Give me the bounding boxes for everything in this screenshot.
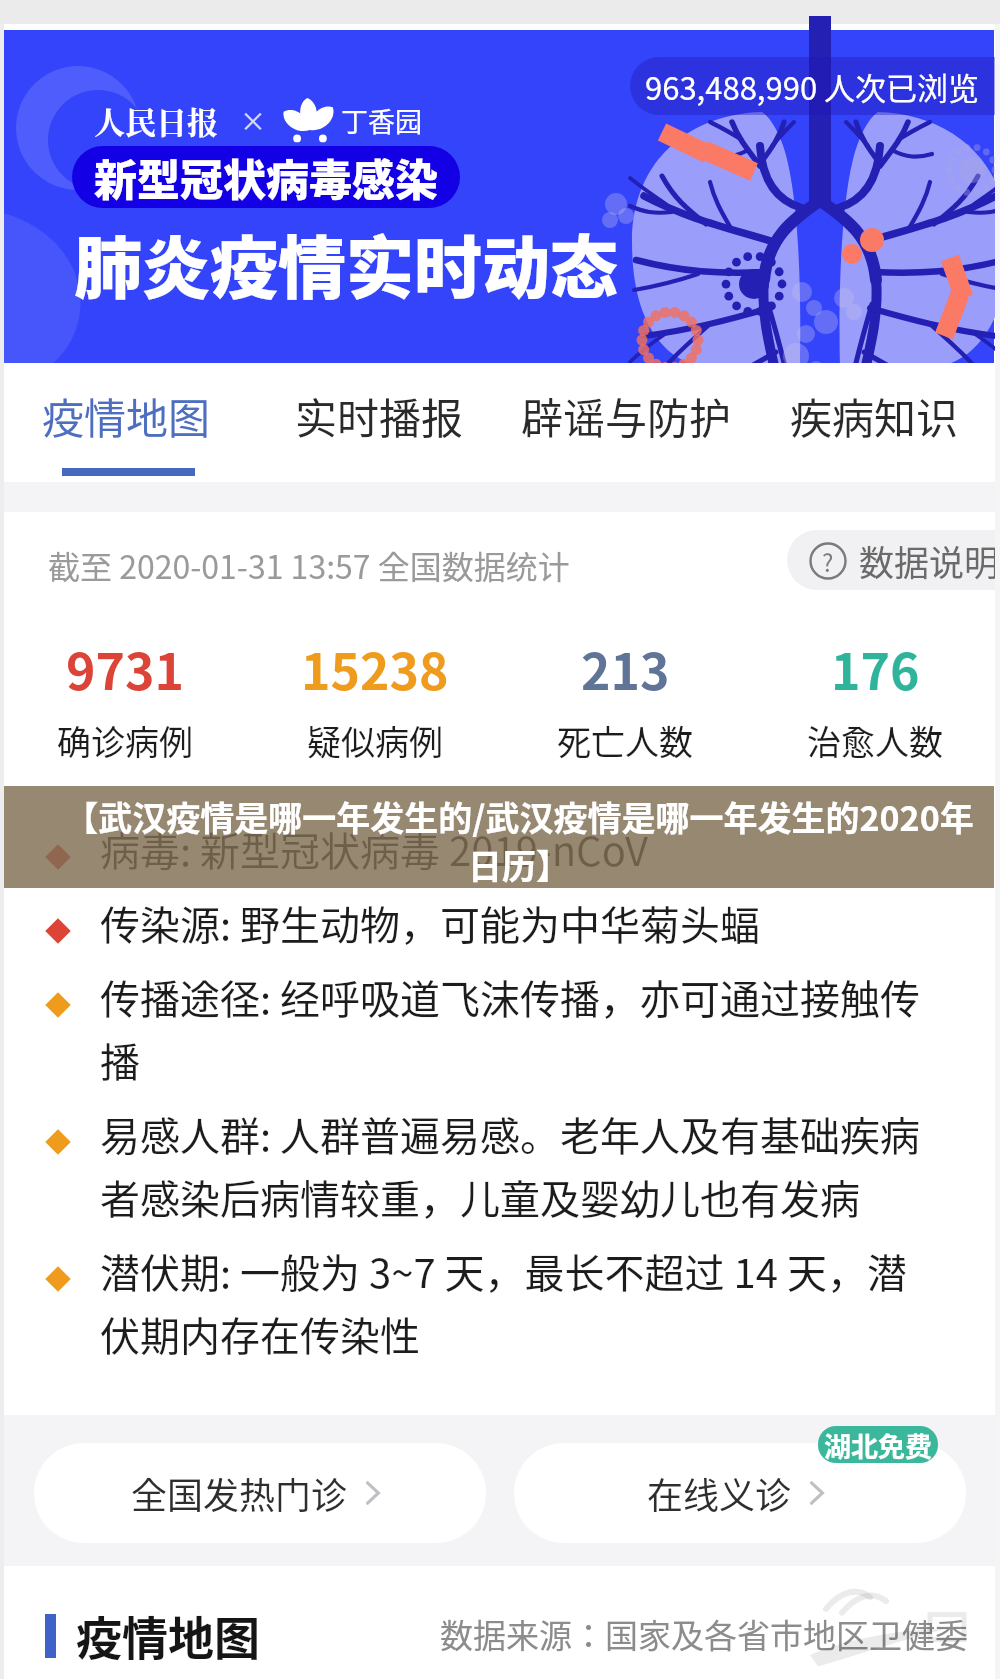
staticText: 新型冠状病毒感染 xyxy=(94,146,438,208)
staticText: 肺炎疫情实时动态 xyxy=(74,214,619,312)
staticText: 全国发热门诊 xyxy=(131,1467,348,1519)
staticText: 176 xyxy=(831,632,920,704)
staticText: 213 xyxy=(581,632,670,704)
staticText: 实时播报 xyxy=(295,385,464,446)
staticText: 15238 xyxy=(301,632,449,704)
staticText: 人民日报 xyxy=(94,98,218,143)
staticText: 病毒: 新型冠状病毒 2019-nCoV xyxy=(100,820,926,878)
staticText: 【武汉疫情是哪一年发生的/武汉疫情是哪一年发生的2020年日历】 xyxy=(56,792,982,888)
staticText: 潜伏期: 一般为 3~7 天，最长不超过 14 天，潜伏期内存在传染性 xyxy=(100,1242,926,1363)
button[interactable]: 疫情地图 xyxy=(42,385,211,446)
staticText: 截至 2020-01-31 13:57 全国数据统计 xyxy=(48,542,570,588)
button[interactable]: 疾病知识 xyxy=(790,385,959,446)
staticText: ? xyxy=(822,544,834,579)
staticText: 数据来源：国家及各省市地区卫健委 xyxy=(440,1610,968,1658)
staticText: 963,488,990 人次已浏览 xyxy=(645,64,980,109)
staticText: 易感人群: 人群普遍易感。老年人及有基础疾病者感染后病情较重，儿童及婴幼儿也有发… xyxy=(100,1105,926,1226)
staticText: 传播途径: 经呼吸道飞沫传播，亦可通过接触传播 xyxy=(100,968,926,1089)
staticText: 在线义诊 xyxy=(647,1467,792,1519)
staticText: 丁香园 xyxy=(341,101,422,140)
button[interactable]: 在线义诊 xyxy=(514,1443,966,1543)
button[interactable]: 辟谣与防护 xyxy=(521,385,732,446)
button[interactable]: 全国发热门诊 xyxy=(34,1443,486,1543)
staticText: 数据说明 xyxy=(859,535,1000,586)
staticText: 死亡人数 xyxy=(557,716,693,765)
staticText: 传染源: 野生动物，可能为中华菊头蝠 xyxy=(100,894,926,952)
staticText: 湖北免费 xyxy=(824,1426,932,1463)
staticText: 疫情地图 xyxy=(76,1602,260,1669)
staticText: 疾病知识 xyxy=(790,385,959,446)
staticText: 确诊病例 xyxy=(57,716,193,765)
staticText: 疫情地图 xyxy=(42,385,211,446)
staticText: 疑似病例 xyxy=(307,716,443,765)
staticText: 治愈人数 xyxy=(807,716,943,765)
staticText: 辟谣与防护 xyxy=(521,385,732,446)
button[interactable]: ? xyxy=(787,530,1000,590)
staticText: 9731 xyxy=(66,632,184,704)
staticText: × xyxy=(240,101,267,139)
button[interactable]: 实时播报 xyxy=(295,385,464,446)
